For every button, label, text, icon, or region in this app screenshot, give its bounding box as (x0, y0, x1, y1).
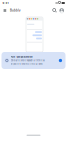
button[interactable]: Account (58, 6, 65, 15)
button[interactable]: Menu (1, 6, 8, 15)
staticText: Pozvi spolupracovnikov (10, 56, 32, 58)
staticText: Bubbly (10, 9, 21, 12)
staticText: Zdielajte svoje napady a rychlo sa (10, 59, 44, 62)
staticText: pripojte k svojmu timu uz dnes (10, 63, 42, 65)
button[interactable]: Pozvi spolupracovnikov (1, 52, 65, 69)
button[interactable]: Search (51, 6, 58, 15)
staticText: 9:41 (2, 1, 8, 5)
